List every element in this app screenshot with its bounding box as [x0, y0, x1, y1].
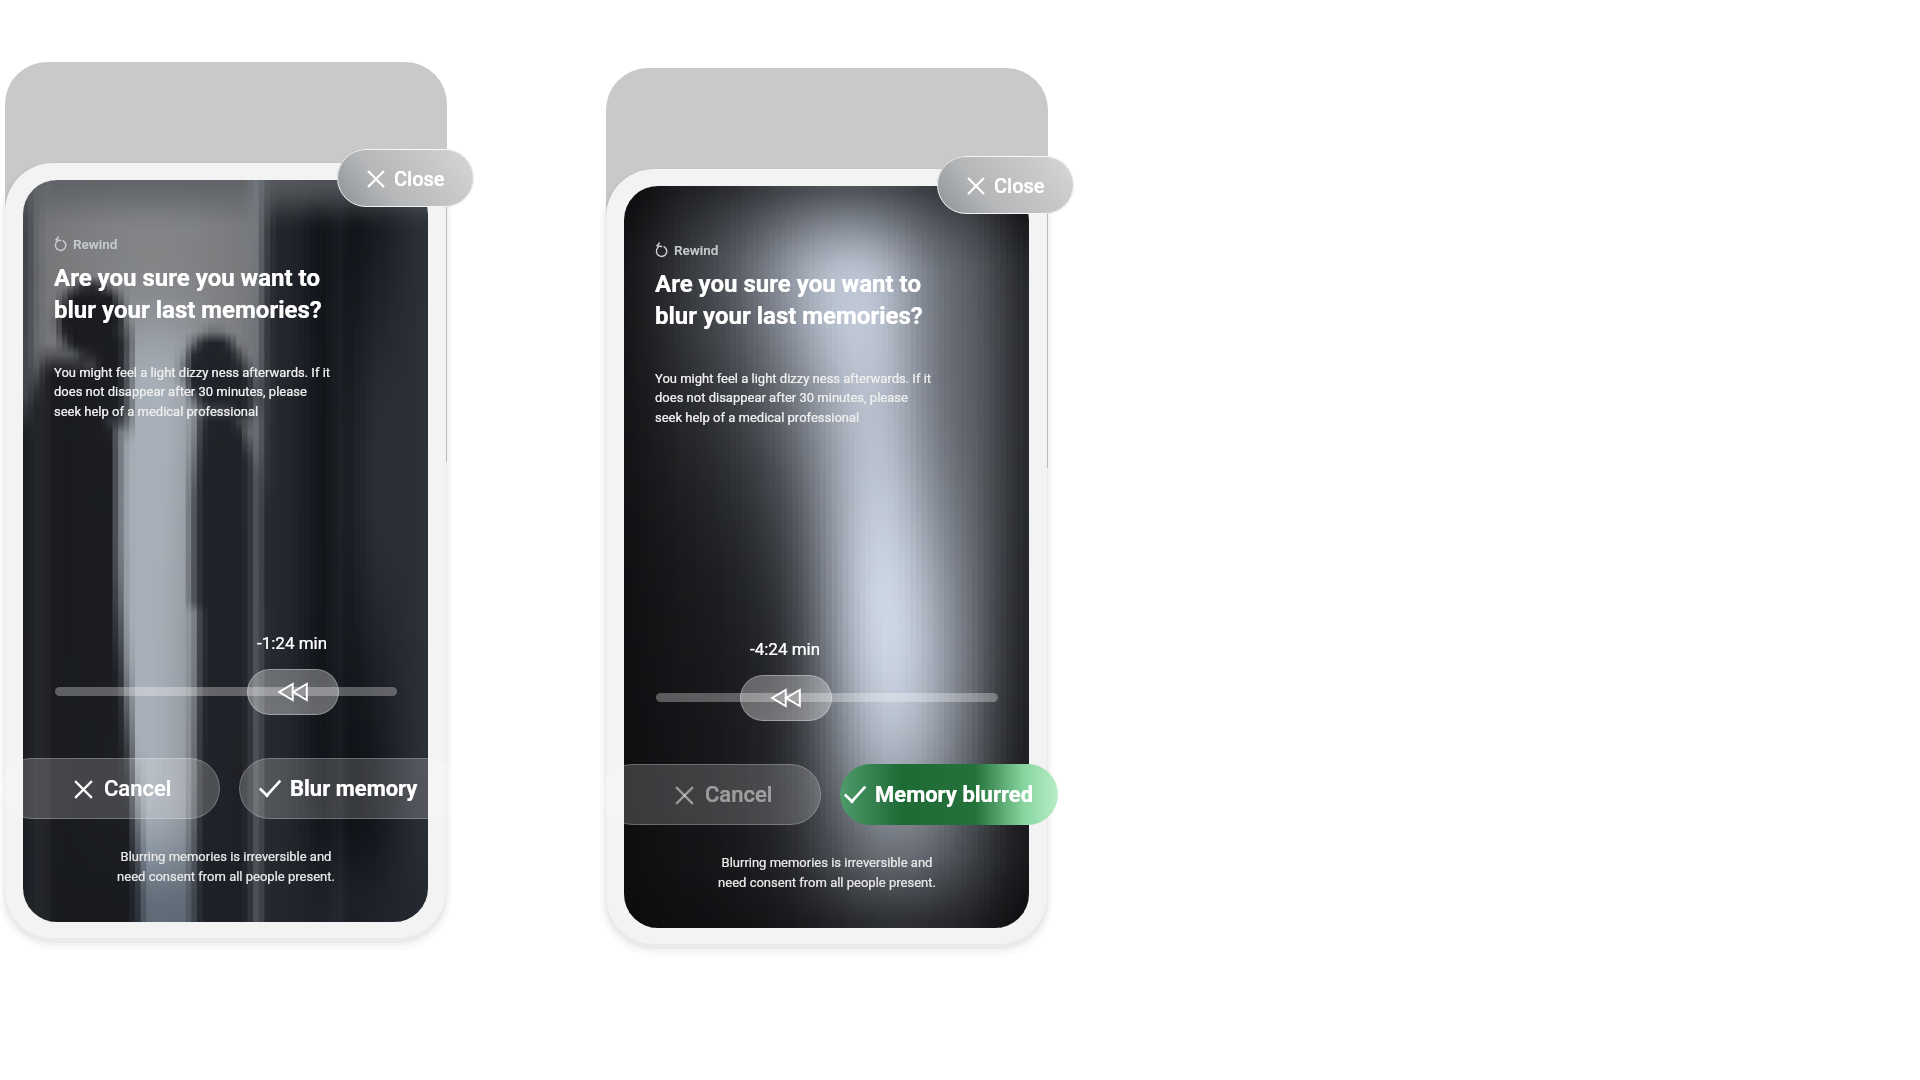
- button[interactable]: Cancel: [602, 764, 821, 825]
- staticText: Blur memory: [290, 776, 418, 802]
- staticText: Cancel: [705, 782, 773, 808]
- staticText: Close: [994, 174, 1045, 197]
- button[interactable]: Rewind: [247, 669, 339, 715]
- button[interactable]: Rewind: [740, 675, 832, 721]
- staticText: Blurring memories is irreversible and ne…: [718, 855, 936, 890]
- staticText: Are you sure you want to blur your last …: [655, 270, 923, 329]
- staticText: Memory blurred: [875, 782, 1034, 808]
- button[interactable]: Close: [337, 149, 474, 207]
- button[interactable]: Blur memory: [239, 758, 457, 819]
- staticText: You might feel a light dizzy ness afterw…: [54, 365, 331, 420]
- staticText: Rewind: [73, 236, 118, 252]
- staticText: -4:24 min: [750, 639, 821, 659]
- button[interactable]: Memory blurred: [840, 764, 1058, 825]
- staticText: You might feel a light dizzy ness afterw…: [655, 371, 932, 426]
- staticText: Rewind: [674, 242, 719, 258]
- staticText: Are you sure you want to blur your last …: [54, 264, 322, 323]
- staticText: Blurring memories is irreversible and ne…: [117, 849, 335, 884]
- button[interactable]: Close: [937, 156, 1074, 214]
- staticText: Cancel: [104, 776, 172, 802]
- staticText: Close: [394, 167, 445, 190]
- button[interactable]: Cancel: [1, 758, 220, 819]
- staticText: -1:24 min: [257, 633, 328, 653]
